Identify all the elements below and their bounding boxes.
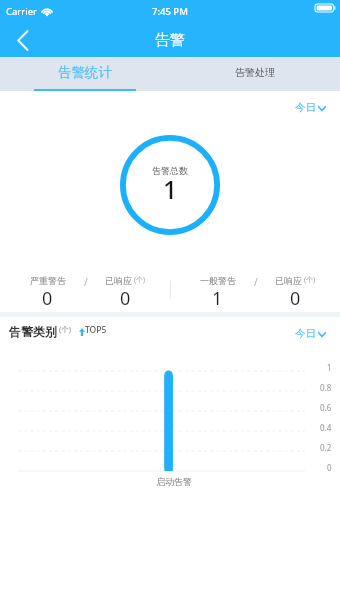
staticText: 今日: [295, 327, 316, 340]
staticText: 0: [290, 286, 301, 311]
staticText: 0.2: [320, 442, 332, 453]
staticText: 0: [120, 286, 131, 311]
staticText: 0: [327, 462, 332, 473]
button[interactable]: 告警统计: [0, 58, 170, 91]
button[interactable]: 告警处理: [170, 58, 340, 91]
staticText: (个): [134, 275, 146, 285]
staticText: 0.4: [320, 422, 332, 433]
staticText: 0.6: [320, 402, 332, 413]
staticText: 今日: [295, 101, 316, 114]
button[interactable]: Back: [0, 22, 46, 58]
staticText: Carrier: [6, 5, 37, 18]
staticText: 告警处理: [235, 66, 275, 79]
staticText: 已响应: [275, 275, 302, 286]
staticText: 已响应: [105, 275, 132, 286]
staticText: 0.8: [320, 382, 332, 393]
button[interactable]: 今日: [295, 326, 326, 339]
staticText: 告警统计: [58, 64, 112, 81]
staticText: 1: [163, 172, 178, 206]
staticText: 告警: [155, 31, 185, 50]
staticText: 一般警告: [200, 275, 236, 286]
staticText: TOP5: [85, 324, 107, 336]
staticText: 告警总数: [152, 165, 188, 176]
staticText: 告警类别: [9, 324, 57, 339]
staticText: 启动告警: [156, 476, 192, 487]
staticText: /: [254, 275, 258, 289]
staticText: 严重警告: [30, 275, 66, 286]
staticText: /: [84, 275, 88, 289]
staticText: 7:45 PM: [152, 5, 188, 18]
button[interactable]: 今日: [295, 100, 326, 113]
staticText: 1: [212, 286, 223, 311]
staticText: (个): [304, 275, 316, 285]
staticText: 1: [327, 362, 332, 373]
staticText: 0: [42, 286, 53, 311]
staticText: (个): [59, 324, 71, 334]
